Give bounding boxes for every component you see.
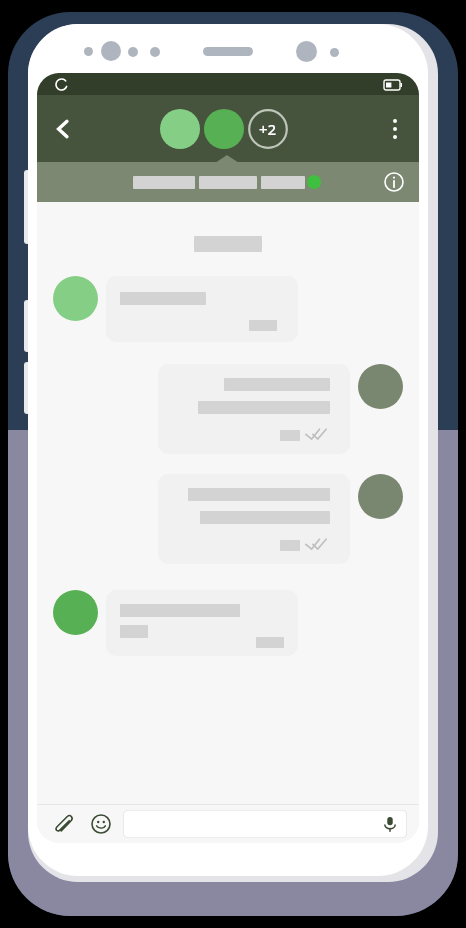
button[interactable]: +2 (248, 109, 288, 149)
button[interactable]: Attach (47, 808, 79, 840)
button[interactable]: Participant 2 (204, 109, 244, 149)
button[interactable]: Group info (377, 165, 411, 199)
button[interactable] (106, 590, 298, 656)
button[interactable]: Back (43, 109, 83, 149)
button[interactable] (158, 364, 350, 454)
button[interactable]: Participant 1 (160, 109, 200, 149)
button[interactable] (158, 474, 350, 564)
staticText: +2 (259, 119, 277, 139)
button[interactable]: More options (375, 109, 415, 149)
button[interactable]: Voice message (379, 813, 401, 835)
button[interactable] (106, 276, 298, 342)
button[interactable]: Voice message (123, 810, 407, 838)
button[interactable]: Emoji (85, 808, 117, 840)
